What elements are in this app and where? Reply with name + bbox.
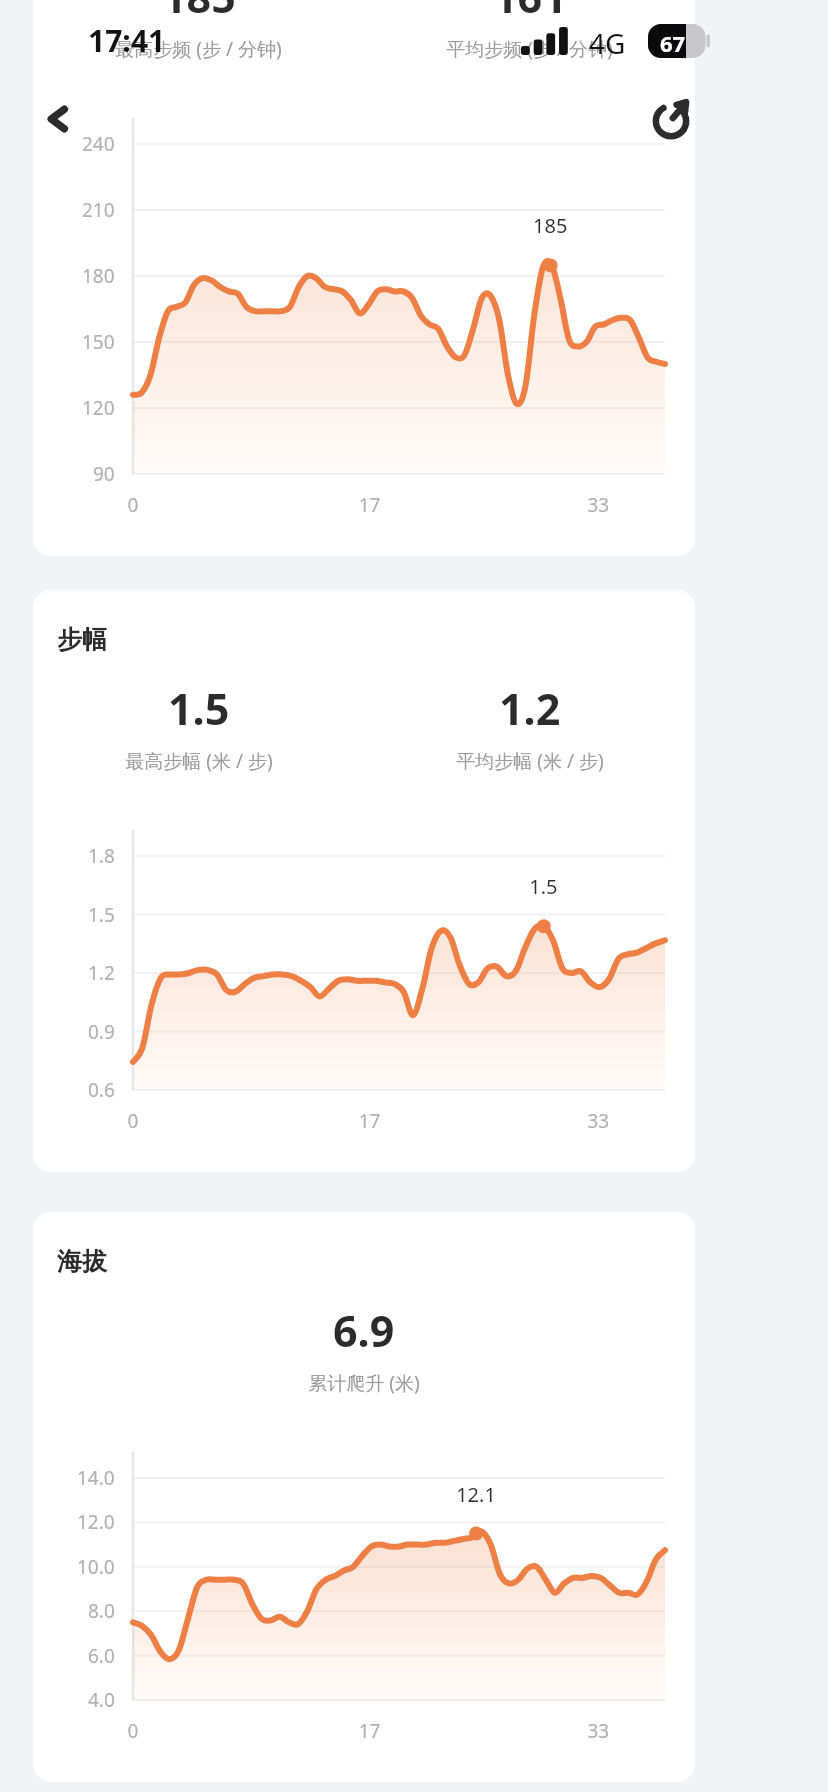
staticText: 平均步幅 (米 / 步) — [456, 748, 604, 774]
staticText: 67 — [660, 28, 686, 58]
staticText: 161 — [493, 0, 567, 26]
staticText: 累计爬升 (米) — [308, 1370, 420, 1396]
staticText: 1.2 — [499, 679, 561, 738]
button[interactable]: 海拔 — [33, 1212, 695, 1782]
staticText: 4G — [589, 24, 626, 62]
staticText: 最高步幅 (米 / 步) — [125, 748, 273, 774]
button[interactable]: 步频 — [33, 0, 695, 556]
staticText: 6.9 — [333, 1301, 395, 1360]
staticText: 1.5 — [168, 679, 230, 738]
button[interactable]: Back — [22, 84, 92, 154]
staticText: 最高步频 (步 / 分钟) — [115, 36, 282, 62]
button[interactable]: 步幅 — [33, 590, 695, 1172]
staticText: 步幅 — [57, 624, 107, 655]
staticText: 17:41 — [88, 20, 166, 61]
staticText: 平均步频 (步 / 分钟) — [446, 36, 613, 62]
staticText: 185 — [162, 0, 236, 26]
staticText: 海拔 — [57, 1246, 107, 1277]
button[interactable]: Share — [636, 84, 706, 154]
